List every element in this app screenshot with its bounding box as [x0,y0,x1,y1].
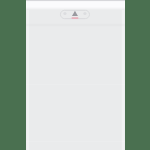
button[interactable]: Map [60,9,70,20]
button[interactable]: Trips [70,9,80,20]
button[interactable]: Account [80,9,90,20]
